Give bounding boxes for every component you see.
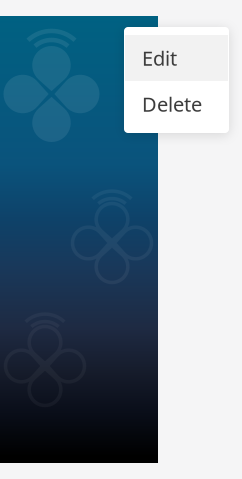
staticText: Edit: [142, 45, 177, 71]
button[interactable]: Delete: [125, 81, 228, 127]
button[interactable]: Edit: [125, 35, 228, 81]
staticText: Delete: [142, 91, 202, 117]
